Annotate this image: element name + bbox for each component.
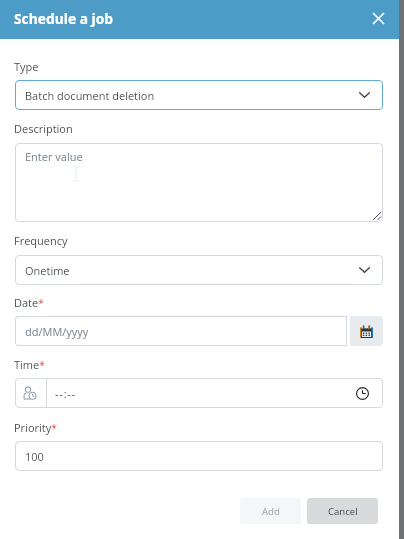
button[interactable]: Enter value — [15, 143, 383, 222]
staticText: 100 — [25, 449, 44, 464]
staticText: Time* — [14, 357, 45, 372]
staticText: Onetime — [25, 263, 70, 278]
button[interactable]: --:-- — [15, 378, 383, 408]
button[interactable]: Batch document deletion — [15, 80, 383, 110]
button[interactable]: Open calendar — [350, 316, 383, 346]
button[interactable]: Close — [366, 6, 390, 30]
staticText: Priority* — [14, 420, 57, 435]
button[interactable]: dd/MM/yyyy — [15, 316, 347, 346]
button[interactable]: 100 — [15, 441, 383, 471]
staticText: Enter value — [25, 149, 83, 164]
staticText: Batch document deletion — [25, 88, 155, 103]
button[interactable]: Add — [240, 498, 301, 524]
staticText: Cancel — [328, 505, 358, 518]
staticText: Date* — [14, 295, 44, 310]
staticText: Schedule a job — [14, 9, 114, 28]
staticText: Frequency — [14, 233, 68, 248]
staticText: dd/MM/yyyy — [25, 324, 89, 339]
staticText: --:-- — [55, 386, 77, 401]
staticText: Add — [262, 505, 280, 518]
staticText: Description — [14, 121, 73, 136]
staticText: Type — [14, 59, 39, 74]
button[interactable]: Onetime — [15, 255, 383, 285]
button[interactable]: Cancel — [307, 498, 378, 524]
